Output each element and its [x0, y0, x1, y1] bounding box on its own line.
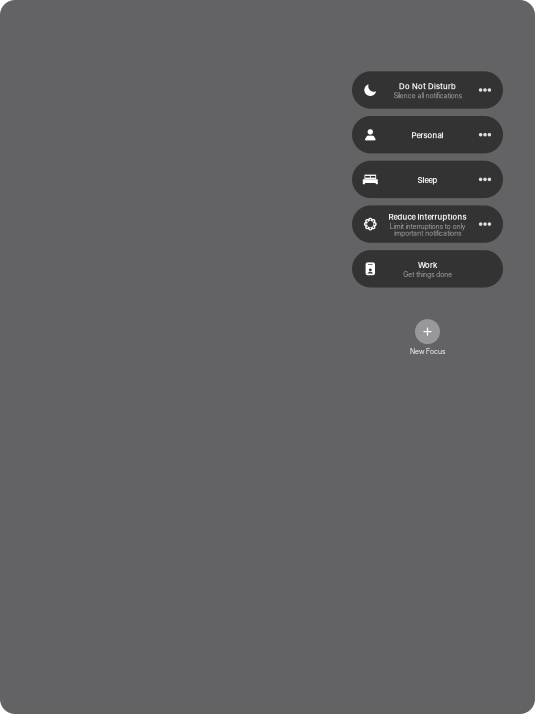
- button[interactable]: More options for Do Not Disturb: [474, 71, 496, 109]
- button[interactable]: Personal: [352, 116, 503, 153]
- button[interactable]: More options for Personal: [474, 116, 496, 153]
- staticText: Personal: [411, 131, 443, 140]
- button[interactable]: New Focus: [352, 319, 503, 356]
- staticText: Reduce Interruptions: [388, 212, 466, 222]
- staticText: Get things done: [403, 270, 452, 279]
- button[interactable]: Do Not Disturb: [352, 71, 503, 109]
- staticText: Work: [418, 260, 437, 270]
- staticText: New Focus: [410, 347, 445, 356]
- button[interactable]: More options for Reduce Interruptions: [474, 205, 496, 243]
- button[interactable]: Work: [352, 250, 503, 287]
- staticText: Sleep: [417, 175, 437, 185]
- staticText: Silence all notifications: [393, 92, 461, 100]
- staticText: Do Not Disturb: [399, 81, 456, 91]
- staticText: Limit interruptions to only important no…: [389, 222, 465, 237]
- button[interactable]: More options for Sleep: [474, 161, 496, 198]
- button[interactable]: Reduce Interruptions: [352, 205, 503, 243]
- button[interactable]: Sleep: [352, 161, 503, 198]
